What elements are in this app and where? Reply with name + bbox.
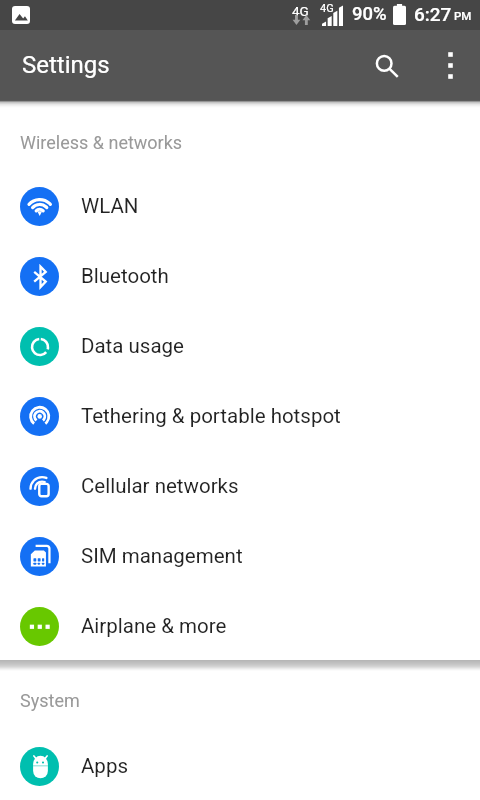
staticText: Cellular networks (81, 474, 239, 498)
button[interactable]: Cellular networks (0, 451, 480, 521)
button[interactable]: Bluetooth (0, 241, 480, 311)
staticText: Tethering & portable hotspot (81, 404, 341, 428)
button[interactable]: Apps (0, 731, 480, 800)
staticText: Apps (81, 754, 128, 778)
staticText: SIM management (81, 544, 243, 568)
button[interactable]: Airplane & more (0, 591, 480, 661)
staticText: Wireless & networks (20, 132, 183, 153)
staticText: 6:27 (414, 3, 452, 25)
staticText: 4G (292, 3, 309, 19)
staticText: 90% (352, 3, 387, 25)
staticText: 4G (320, 2, 334, 15)
button[interactable]: More options (422, 37, 478, 93)
staticText: Data usage (81, 334, 184, 358)
button[interactable]: Search (355, 37, 411, 93)
button[interactable]: Tethering & portable hotspot (0, 381, 480, 451)
staticText: System (20, 690, 80, 711)
button[interactable]: SIM management (0, 521, 480, 591)
staticText: PM (454, 9, 472, 22)
staticText: WLAN (81, 194, 139, 218)
staticText: Settings (22, 51, 110, 79)
button[interactable]: WLAN (0, 171, 480, 241)
staticText: Airplane & more (81, 614, 227, 638)
button[interactable]: Data usage (0, 311, 480, 381)
staticText: Bluetooth (81, 264, 169, 288)
